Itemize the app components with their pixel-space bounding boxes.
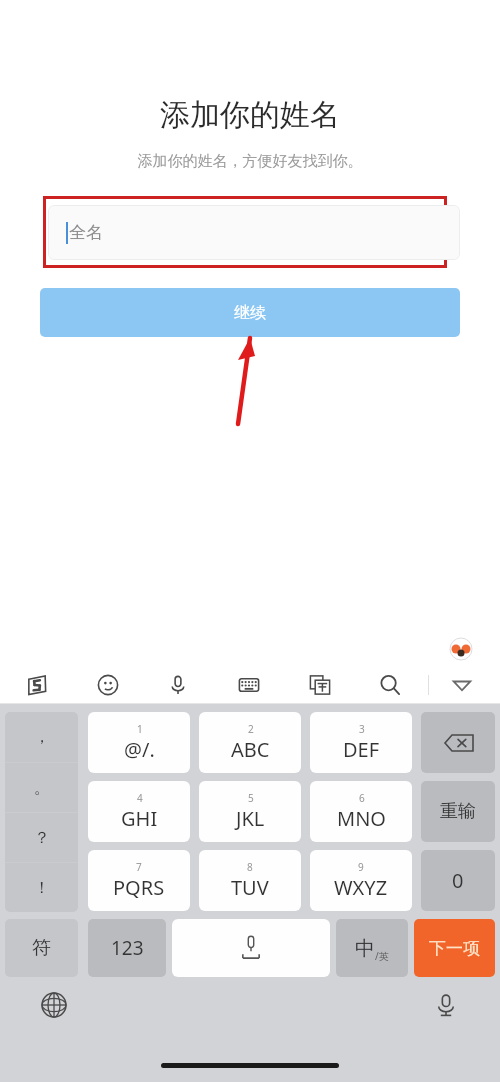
- button[interactable]: 符: [5, 919, 78, 977]
- button[interactable]: Backspace: [421, 712, 495, 773]
- button[interactable]: Search: [373, 665, 407, 704]
- staticText: 1: [137, 722, 143, 736]
- staticText: 中: [355, 936, 375, 961]
- staticText: 9: [358, 860, 364, 874]
- staticText: ？: [34, 828, 50, 848]
- button[interactable]: 下一项: [414, 919, 495, 977]
- button[interactable]: Change language: [36, 987, 72, 1023]
- button[interactable]: Emoji: [91, 665, 125, 704]
- button[interactable]: 全名: [48, 205, 460, 260]
- button[interactable]: 继续: [40, 288, 460, 337]
- staticText: 8: [247, 860, 253, 874]
- staticText: ，: [34, 727, 50, 747]
- button[interactable]: 。: [5, 763, 78, 812]
- button[interactable]: 8: [199, 850, 301, 911]
- staticText: 7: [136, 860, 142, 874]
- staticText: 添加你的姓名: [0, 96, 500, 134]
- button[interactable]: ？: [5, 813, 78, 862]
- button[interactable]: 9: [310, 850, 412, 911]
- button[interactable]: Voice input: [428, 987, 464, 1023]
- staticText: 重输: [440, 800, 476, 823]
- staticText: MNO: [337, 805, 386, 832]
- button[interactable]: 6: [310, 781, 412, 842]
- staticText: 符: [32, 936, 51, 960]
- staticText: TUV: [231, 874, 269, 901]
- staticText: @/.: [124, 736, 155, 763]
- button[interactable]: Sogou input: [20, 665, 54, 704]
- staticText: 添加你的姓名，方便好友找到你。: [0, 152, 500, 171]
- staticText: 4: [137, 791, 143, 805]
- staticText: 全名: [69, 222, 103, 243]
- button[interactable]: 中: [336, 919, 408, 977]
- button[interactable]: Keyboard layout: [232, 665, 266, 704]
- button[interactable]: 2: [199, 712, 301, 773]
- staticText: ABC: [231, 736, 270, 763]
- button[interactable]: 5: [199, 781, 301, 842]
- button[interactable]: 3: [310, 712, 412, 773]
- button[interactable]: ，: [5, 712, 78, 762]
- button[interactable]: Space, voice input: [172, 919, 330, 977]
- staticText: 6: [359, 791, 365, 805]
- staticText: 继续: [234, 303, 266, 323]
- button[interactable]: 7: [88, 850, 190, 911]
- button[interactable]: 重输: [421, 781, 495, 842]
- staticText: 3: [359, 722, 365, 736]
- staticText: 123: [111, 935, 144, 961]
- button[interactable]: 1: [88, 712, 190, 773]
- staticText: 。: [34, 778, 50, 798]
- staticText: JKL: [236, 805, 265, 832]
- button[interactable]: Hide keyboard: [443, 665, 481, 704]
- button[interactable]: 4: [88, 781, 190, 842]
- staticText: 下一项: [429, 938, 480, 959]
- staticText: PQRS: [113, 874, 165, 901]
- other: Avatar: [450, 638, 472, 660]
- button[interactable]: ！: [5, 863, 78, 912]
- staticText: 5: [248, 791, 254, 805]
- button[interactable]: Translate: [303, 665, 337, 704]
- button[interactable]: Voice input: [161, 665, 195, 704]
- staticText: ！: [34, 878, 50, 898]
- staticText: DEF: [343, 736, 380, 763]
- staticText: GHI: [121, 805, 158, 832]
- staticText: /英: [375, 949, 389, 963]
- button[interactable]: 123: [88, 919, 166, 977]
- staticText: 2: [248, 722, 254, 736]
- staticText: 0: [452, 867, 464, 894]
- staticText: WXYZ: [334, 874, 388, 901]
- button[interactable]: 0: [421, 850, 495, 911]
